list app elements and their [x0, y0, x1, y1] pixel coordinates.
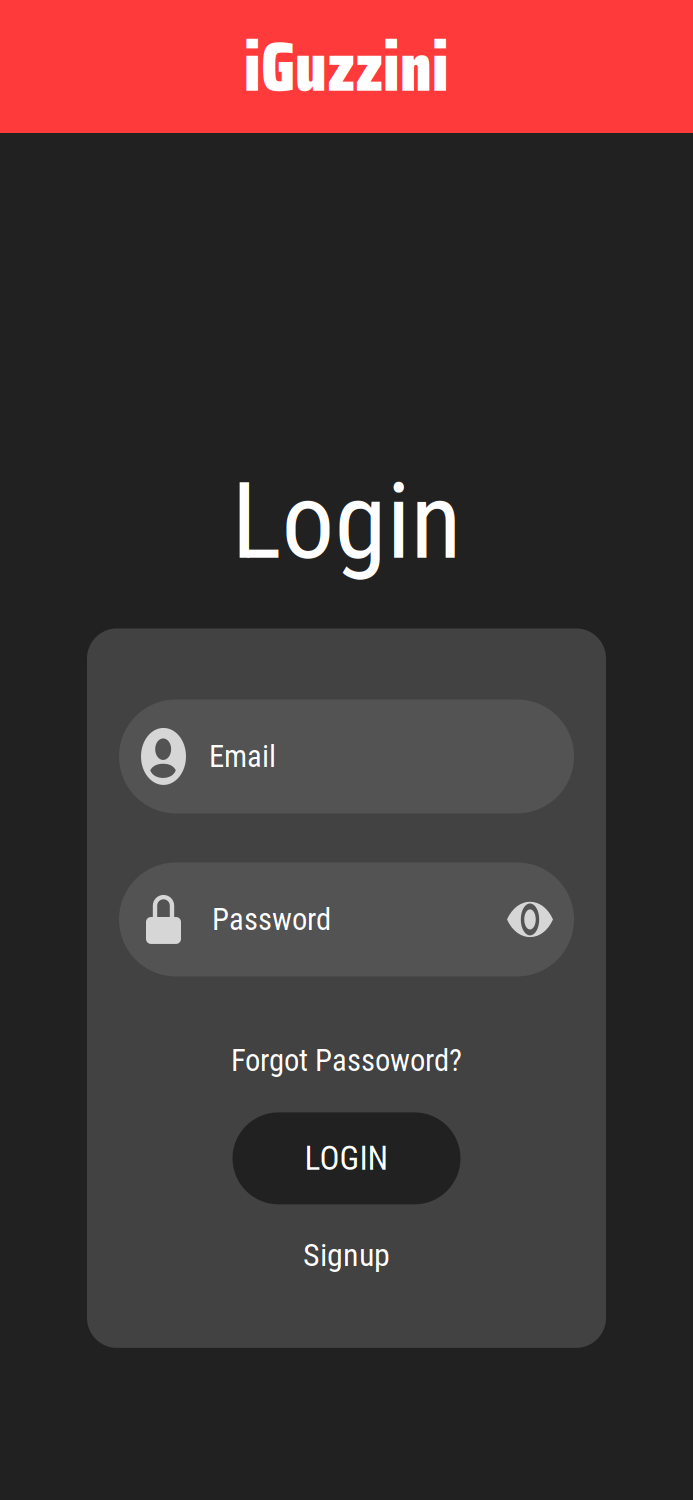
staticText: LOGIN: [304, 1139, 388, 1178]
staticText: Password: [212, 901, 331, 937]
staticText: Signup: [303, 1236, 390, 1274]
button[interactable]: LOGIN: [232, 1112, 460, 1204]
staticText: iGuzzini: [244, 12, 449, 121]
button[interactable]: Signup: [303, 1236, 390, 1274]
staticText: Email: [209, 738, 276, 774]
button[interactable]: Show password: [507, 900, 553, 938]
staticText: Forgot Passoword?: [231, 1042, 462, 1078]
button[interactable]: Forgot Passoword?: [231, 1042, 462, 1078]
staticText: Login: [231, 460, 461, 583]
